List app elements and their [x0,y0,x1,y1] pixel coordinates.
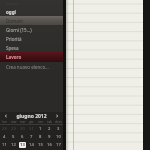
button[interactable]: Giorni (15...) [0,25,63,34]
staticText: 7 [30,134,33,140]
staticText: sab [47,120,52,124]
button[interactable] [66,0,143,150]
staticText: 29 [11,126,16,132]
staticText: 8 [39,134,42,140]
staticText: ven [38,120,44,124]
button[interactable]: Mese precedente [3,113,9,119]
button[interactable]: Lavoro [0,52,63,62]
staticText: 1 [39,126,42,132]
button[interactable]: 31 [27,125,36,133]
button[interactable]: 8 [36,133,45,141]
button[interactable]: 5 [9,133,18,141]
staticText: mer [20,120,26,124]
staticText: 6 [21,134,24,140]
button[interactable]: 10 [54,133,63,141]
button[interactable]: 13 [18,141,27,149]
button[interactable]: 16 [45,141,54,149]
staticText: Crea nuovo elenco... [6,64,49,70]
staticText: mar [11,120,17,124]
button[interactable]: 15 [36,141,45,149]
staticText: Giorni (15...) [6,27,32,33]
staticText: Lavoro [6,54,22,60]
staticText: 10 [56,134,61,140]
staticText: 3 [57,126,60,132]
button[interactable]: 3 [54,125,63,133]
button[interactable]: 29 [9,125,18,133]
button[interactable]: 1 [36,125,45,133]
staticText: 31 [29,126,34,132]
staticText: 2 [48,126,51,132]
staticText: gio [29,120,34,124]
button[interactable]: Priorità [0,34,63,43]
button[interactable]: 7 [27,133,36,141]
button[interactable]: Spesa [0,43,63,52]
button[interactable]: 14 [27,141,36,149]
button[interactable]: Domani [0,16,63,25]
button[interactable]: 12 [9,141,18,149]
button[interactable]: Mese successivo [54,113,60,119]
button[interactable]: 4 [0,133,9,141]
staticText: 30 [20,126,25,132]
staticText: 16 [47,142,52,148]
staticText: Priorità [6,36,22,42]
staticText: giugno 2012 [9,113,54,120]
button[interactable]: 2 [45,125,54,133]
button[interactable]: oggi [0,7,63,16]
button[interactable]: 28 [0,125,9,133]
staticText: 5 [12,134,15,140]
button[interactable]: Crea nuovo elenco... [0,62,63,71]
staticText: lun [2,120,7,124]
staticText: 13 [20,142,25,148]
staticText: dom [55,120,62,124]
staticText: 28 [2,126,7,132]
staticText: 4 [3,134,6,140]
button[interactable]: 30 [18,125,27,133]
staticText: 11 [2,142,7,148]
button[interactable]: 17 [54,141,63,149]
staticText: Domani [6,18,23,24]
staticText: Spesa [6,45,19,51]
staticText: 9 [48,134,51,140]
staticText: oggi [6,9,16,15]
button[interactable]: 9 [45,133,54,141]
button[interactable]: 6 [18,133,27,141]
staticText: 17 [56,142,61,148]
staticText: 12 [11,142,16,148]
button[interactable]: 11 [0,141,9,149]
staticText: 14 [29,142,34,148]
staticText: 15 [38,142,43,148]
